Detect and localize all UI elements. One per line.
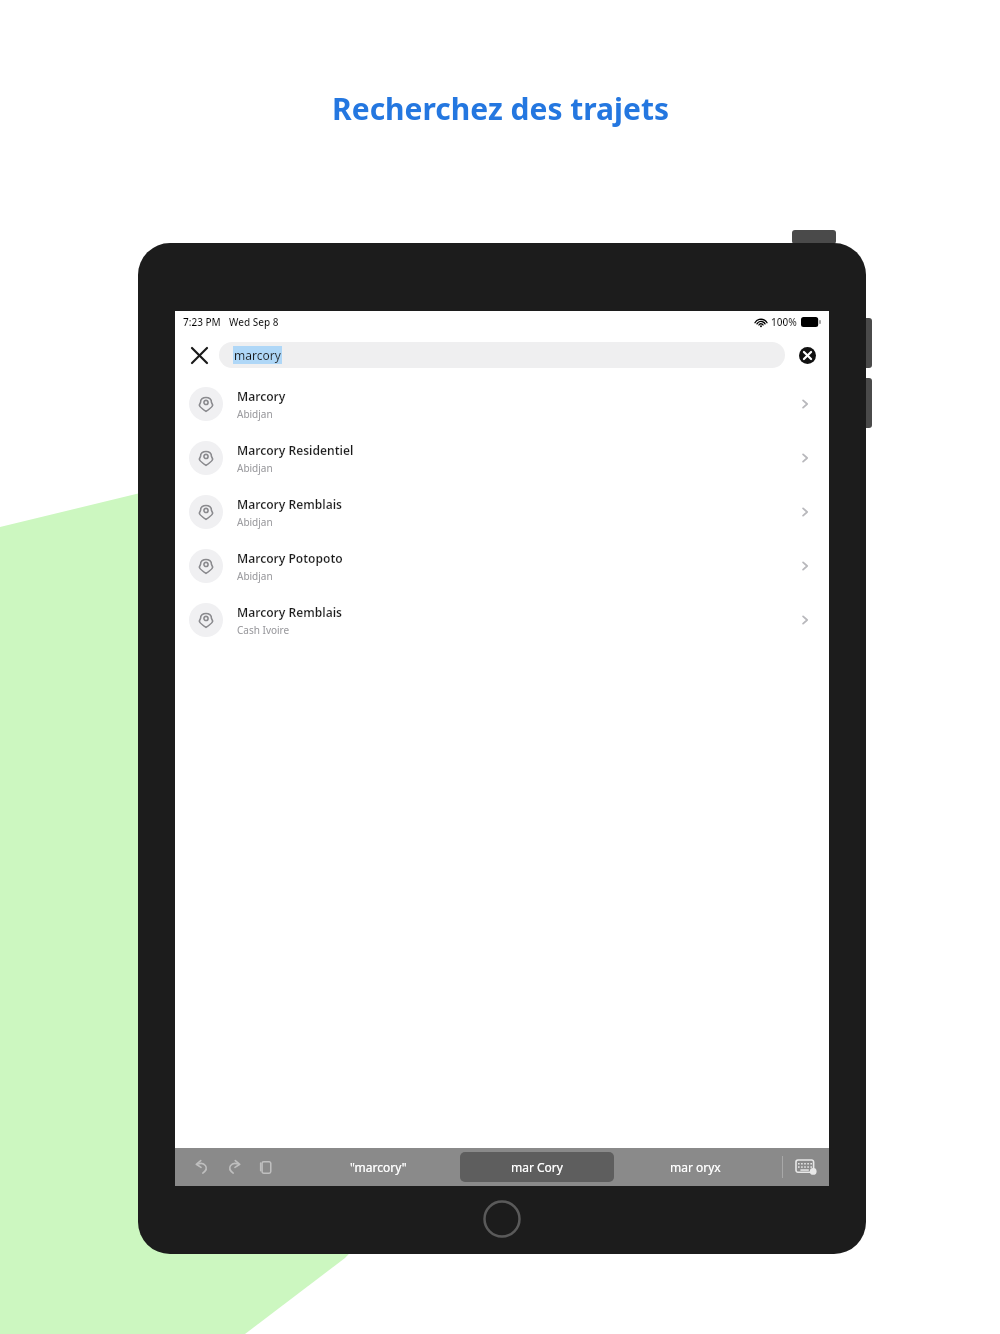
button[interactable]: Undo [189, 1154, 215, 1180]
staticText: Marcory Remblais [237, 496, 342, 512]
button[interactable]: mar oryx [618, 1152, 772, 1182]
button[interactable]: mar Cory [460, 1152, 614, 1182]
staticText: Wed Sep 8 [229, 315, 279, 329]
button[interactable]: Close [183, 339, 215, 371]
button[interactable]: Marcory Potopoto [175, 539, 829, 593]
staticText: 100% [771, 315, 797, 329]
staticText: Abidjan [237, 515, 273, 529]
staticText: Marcory Potopoto [237, 550, 343, 566]
button[interactable]: Redo [221, 1154, 247, 1180]
staticText: "marcory" [350, 1159, 407, 1175]
staticText: mar oryx [670, 1159, 721, 1175]
button[interactable]: Marcory Remblais [175, 485, 829, 539]
button[interactable]: Marcory Remblais [175, 593, 829, 647]
staticText: Abidjan [237, 407, 273, 421]
staticText: Abidjan [237, 461, 273, 475]
staticText: Marcory Remblais [237, 604, 342, 620]
button[interactable]: Marcory [175, 377, 829, 431]
staticText: Marcory [237, 388, 286, 404]
button[interactable]: Clear search [793, 341, 821, 369]
staticText: 7:23 PM [183, 315, 221, 329]
button[interactable]: "marcory" [301, 1152, 456, 1182]
staticText: Recherchez des trajets [332, 88, 669, 129]
button[interactable]: Marcory Residentiel [175, 431, 829, 485]
staticText: Marcory Residentiel [237, 442, 354, 458]
staticText: Cash Ivoire [237, 623, 290, 637]
button[interactable]: Paste [253, 1154, 279, 1180]
button[interactable]: marcory [219, 342, 785, 368]
staticText: marcory [234, 347, 281, 363]
button[interactable]: Hide keyboard [791, 1152, 821, 1182]
button[interactable]: Home [483, 1200, 521, 1238]
staticText: Abidjan [237, 569, 273, 583]
staticText: mar Cory [511, 1159, 563, 1175]
